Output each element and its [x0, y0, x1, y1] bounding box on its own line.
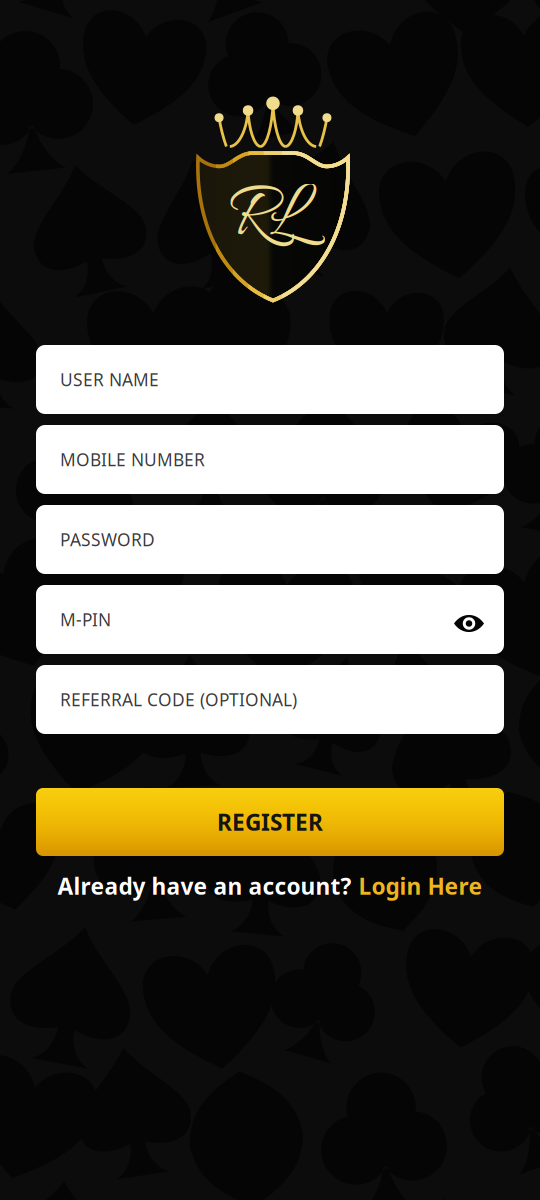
staticText: Already have an account?: [57, 871, 351, 901]
button[interactable]: MOBILE NUMBER: [36, 425, 504, 494]
button[interactable]: PASSWORD: [36, 505, 504, 574]
staticText: MOBILE NUMBER: [60, 448, 205, 471]
button[interactable]: Login Here: [358, 871, 482, 901]
staticText: RL: [228, 170, 302, 267]
staticText: Login Here: [358, 871, 482, 901]
staticText: USER NAME: [60, 368, 159, 391]
staticText: PASSWORD: [60, 528, 155, 551]
staticText: REFERRAL CODE (OPTIONAL): [60, 688, 297, 711]
button[interactable]: REFERRAL CODE (OPTIONAL): [36, 665, 504, 734]
button[interactable]: REGISTER: [36, 788, 504, 856]
staticText: M-PIN: [60, 608, 111, 631]
button[interactable]: USER NAME: [36, 345, 504, 414]
button[interactable]: M-PIN: [36, 585, 504, 654]
staticText: REGISTER: [217, 807, 323, 837]
